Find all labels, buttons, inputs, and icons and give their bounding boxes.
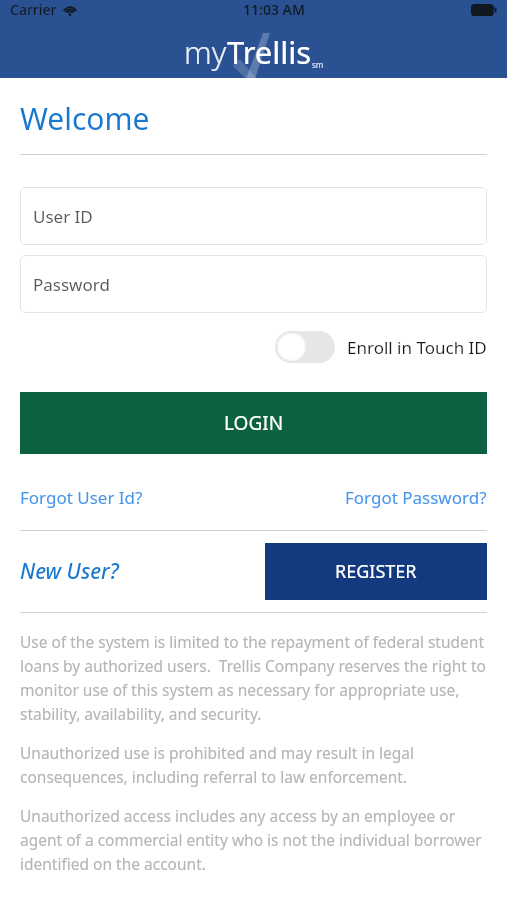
staticText: Unauthorized access includes any access …: [20, 805, 487, 874]
staticText: my: [184, 31, 227, 73]
staticText: Welcome: [20, 98, 150, 139]
staticText: Trellis: [227, 31, 312, 73]
staticText: Carrier: [10, 0, 57, 19]
button[interactable]: User ID: [20, 187, 487, 245]
button[interactable]: Forgot User Id?: [20, 486, 143, 509]
staticText: Use of the system is limited to the repa…: [20, 631, 487, 724]
staticText: Password: [33, 273, 110, 296]
staticText: Forgot User Id?: [20, 486, 143, 509]
button[interactable]: LOGIN: [20, 392, 487, 454]
button[interactable]: Enroll in Touch ID toggle: [275, 331, 335, 363]
staticText: REGISTER: [335, 559, 417, 584]
button[interactable]: REGISTER: [265, 543, 487, 600]
staticText: Forgot Password?: [345, 486, 487, 509]
staticText: Enroll in Touch ID: [347, 336, 487, 359]
staticText: Unauthorized use is prohibited and may r…: [20, 742, 487, 787]
button[interactable]: Forgot Password?: [345, 486, 487, 509]
staticText: New User?: [20, 557, 119, 586]
button[interactable]: New User?: [20, 557, 119, 586]
staticText: User ID: [33, 205, 93, 228]
staticText: 11:03 AM: [243, 0, 305, 19]
button[interactable]: Password: [20, 255, 487, 313]
staticText: LOGIN: [224, 410, 284, 436]
staticText: sm: [312, 59, 324, 70]
